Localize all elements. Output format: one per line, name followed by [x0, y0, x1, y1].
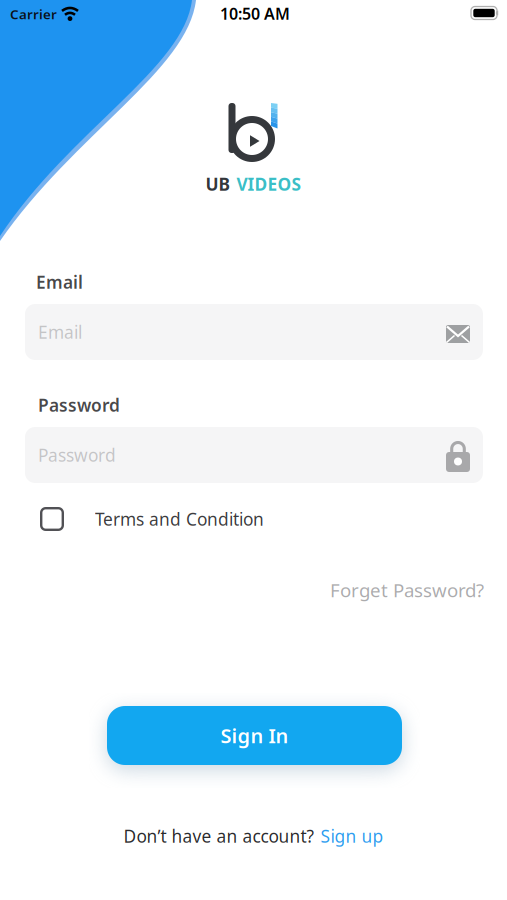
button[interactable]: Terms and Condition [0, 507, 507, 531]
staticText: Don’t have an account? [123, 824, 314, 847]
staticText: Password [38, 443, 116, 466]
staticText: Sign up [320, 824, 383, 847]
staticText: Email [38, 320, 82, 343]
staticText: Carrier [10, 5, 57, 23]
staticText: Email [36, 270, 83, 293]
staticText: UB [205, 172, 230, 195]
button[interactable]: Forget Password? [0, 578, 507, 602]
staticText: 10:50 AM [220, 3, 290, 24]
staticText: Password [38, 393, 120, 416]
button[interactable]: Sign up [320, 824, 383, 847]
staticText: Sign In [220, 722, 288, 749]
staticText: VIDEOS [236, 172, 301, 195]
button[interactable]: Sign In [107, 706, 402, 765]
staticText: Forget Password? [330, 578, 484, 602]
staticText: Terms and Condition [95, 507, 264, 530]
